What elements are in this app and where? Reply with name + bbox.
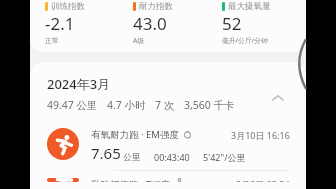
staticText: 52 [222,12,242,35]
staticText: -2.1 [45,12,75,35]
button[interactable]: Running activity [30,121,306,170]
button[interactable]: 耐力指数 [126,0,209,52]
staticText: 公里 [121,151,141,163]
staticText: 4.7 小时 [107,98,146,112]
staticText: 43.0 [133,12,167,35]
staticText: 3,560 千卡 [184,98,235,112]
button[interactable]: Collapse [270,90,286,106]
staticText: 49.47 公里 [47,98,98,112]
staticText: A级 [133,36,145,45]
staticText: 5'42"/公里 [203,151,246,163]
button[interactable]: Running activity [30,171,306,189]
staticText: 最大摄氧量 [228,1,271,12]
button[interactable]: Running activity [47,128,79,160]
button[interactable]: Running activity [47,178,79,182]
staticText: 00:43:40 [154,151,190,163]
button[interactable]: 最大摄氧量 [215,0,298,52]
staticText: 3月9日 05:54 [236,178,290,182]
button[interactable]: 训练指数 [38,0,120,52]
staticText: 有氧耐力跑 · EM强度 [91,128,179,141]
staticText: 7 次 [155,98,175,112]
staticText: 训练指数 [51,1,85,12]
staticText: 3月10日 16:16 [231,129,290,141]
staticText: 毫升/公斤/分钟 [222,36,268,45]
staticText: 乳酸阈值跑 · T强度 [91,178,171,182]
staticText: 耐力指数 [139,1,173,12]
staticText: 正常 [45,36,59,45]
staticText: 7.65 [91,143,121,163]
button[interactable]: 2024年3月 [30,75,306,112]
staticText: 2024年3月 [47,75,111,93]
